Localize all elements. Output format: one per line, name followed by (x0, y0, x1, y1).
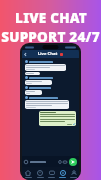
button[interactable] (25, 100, 69, 109)
button[interactable]: Live Chat (22, 50, 79, 58)
button[interactable]: Home (22, 167, 34, 180)
staticText: SUPPORT 24/7 (1, 28, 100, 46)
button[interactable] (25, 80, 52, 85)
button[interactable]: Attach (58, 160, 62, 164)
button[interactable]: Live Chat (57, 167, 68, 180)
button[interactable]: Send (69, 158, 77, 166)
other: Back (24, 53, 27, 56)
staticText: LIVE CHAT (15, 9, 87, 27)
button[interactable]: Emoji (24, 160, 28, 164)
staticText: Live Chat (38, 51, 58, 57)
button[interactable] (25, 72, 40, 75)
button[interactable] (30, 161, 58, 163)
button[interactable]: Chats (46, 167, 57, 180)
button[interactable] (25, 90, 42, 95)
button[interactable]: Profile (68, 167, 79, 180)
button[interactable] (39, 111, 76, 126)
button[interactable]: Updates (34, 167, 46, 180)
button[interactable]: Camera (63, 160, 67, 164)
button[interactable] (25, 64, 66, 71)
